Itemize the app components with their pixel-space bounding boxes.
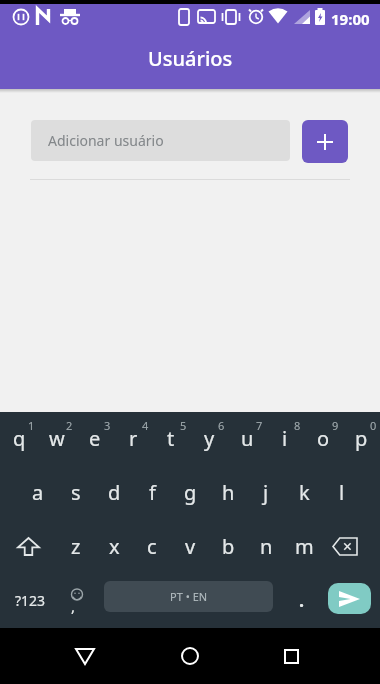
staticText: z — [71, 533, 81, 560]
button[interactable]: . — [287, 581, 317, 619]
button[interactable]: j — [247, 473, 285, 511]
staticText: s — [71, 479, 81, 506]
button[interactable]: r — [114, 419, 152, 457]
button[interactable]: w — [38, 419, 76, 457]
staticText: x — [109, 533, 120, 560]
button[interactable]: l — [323, 473, 361, 511]
staticText: p — [355, 425, 368, 452]
button[interactable] — [61, 632, 109, 680]
button[interactable]: b — [209, 527, 247, 565]
staticText: a — [32, 479, 44, 506]
staticText: q — [13, 425, 26, 452]
button[interactable]: k — [285, 473, 323, 511]
staticText: b — [222, 533, 235, 560]
button[interactable]: e — [76, 419, 114, 457]
staticText: r — [129, 425, 138, 452]
staticText: h — [222, 479, 235, 506]
button[interactable]: o — [304, 419, 342, 457]
button[interactable]: n — [247, 527, 285, 565]
staticText: k — [299, 479, 310, 506]
staticText: 7 — [256, 418, 263, 432]
button[interactable]: PT • EN — [104, 581, 273, 612]
staticText: c — [147, 533, 157, 560]
button[interactable]: f — [133, 473, 171, 511]
button[interactable] — [328, 583, 371, 614]
button[interactable]: h — [209, 473, 247, 511]
staticText: Adicionar usuário — [48, 131, 164, 150]
button[interactable]: z — [57, 527, 95, 565]
staticText: Usuários — [148, 45, 233, 72]
staticText: 1 — [28, 418, 35, 432]
button[interactable]: i — [266, 419, 304, 457]
staticText: m — [295, 533, 314, 560]
staticText: 2 — [66, 418, 73, 432]
staticText: e — [89, 425, 101, 452]
button[interactable] — [302, 120, 348, 163]
button[interactable]: y — [190, 419, 228, 457]
staticText: 4 — [142, 418, 149, 432]
staticText: y — [204, 425, 215, 452]
staticText: . — [299, 588, 305, 613]
staticText: PT • EN — [170, 589, 208, 604]
staticText: w — [49, 425, 65, 452]
button[interactable]: a — [19, 473, 57, 511]
staticText: 9 — [332, 418, 339, 432]
staticText: j — [263, 479, 269, 506]
staticText: , — [71, 596, 76, 616]
button[interactable]: ?123 — [6, 581, 54, 619]
button[interactable] — [9, 527, 47, 565]
button[interactable] — [326, 527, 364, 565]
button[interactable]: d — [95, 473, 133, 511]
staticText: i — [282, 425, 288, 452]
button[interactable]: p — [342, 419, 380, 457]
staticText: d — [108, 479, 121, 506]
staticText: l — [339, 479, 345, 506]
button[interactable]: m — [285, 527, 323, 565]
staticText: 6 — [218, 418, 225, 432]
button[interactable]: q — [0, 419, 38, 457]
staticText: g — [184, 479, 197, 506]
button[interactable]: t — [152, 419, 190, 457]
button[interactable]: u — [228, 419, 266, 457]
staticText: u — [241, 425, 254, 452]
button[interactable]: x — [95, 527, 133, 565]
staticText: t — [167, 425, 175, 452]
button[interactable]: c — [133, 527, 171, 565]
staticText: 8 — [294, 418, 301, 432]
staticText: ?123 — [15, 591, 46, 610]
button[interactable]: g — [171, 473, 209, 511]
button[interactable]: Adicionar usuário — [31, 120, 290, 161]
button[interactable] — [166, 632, 214, 680]
staticText: o — [317, 425, 330, 452]
staticText: 3 — [104, 418, 111, 432]
staticText: 5 — [180, 418, 187, 432]
staticText: v — [185, 533, 196, 560]
button[interactable] — [267, 632, 315, 680]
staticText: 0 — [370, 418, 377, 432]
button[interactable]: s — [57, 473, 95, 511]
button[interactable]: v — [171, 527, 209, 565]
staticText: 19:00 — [331, 9, 370, 29]
staticText: f — [149, 479, 156, 506]
button[interactable]: , — [56, 581, 94, 619]
staticText: n — [260, 533, 273, 560]
